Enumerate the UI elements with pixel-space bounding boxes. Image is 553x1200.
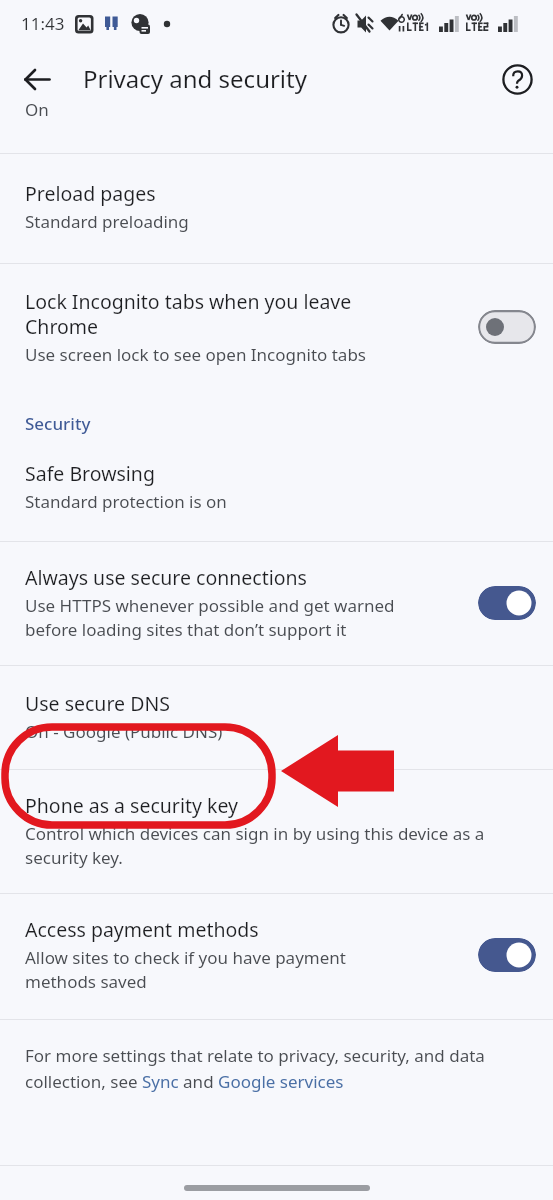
button[interactable]: Safe Browsing	[0, 450, 553, 541]
button[interactable]: Access payment methods	[0, 894, 553, 1019]
button[interactable]: Phone as a security key	[0, 770, 553, 893]
button[interactable]: On	[478, 586, 536, 620]
staticText: On - Google (Public DNS)	[25, 720, 530, 743]
button[interactable]: Help	[491, 53, 543, 105]
button[interactable]: Always use secure connections	[0, 542, 553, 665]
staticText: Use secure DNS	[25, 690, 530, 717]
staticText: Phone as a security key	[25, 792, 536, 819]
staticText: Use screen lock to see open Incognito ta…	[25, 343, 417, 366]
button[interactable]: On	[478, 938, 536, 972]
staticText: Always use secure connections	[25, 564, 417, 591]
staticText: Standard preloading	[25, 210, 530, 233]
staticText: On	[25, 98, 49, 121]
staticText: For more settings that relate to privacy…	[25, 1044, 533, 1093]
staticText: Control which devices can sign in by usi…	[25, 822, 536, 869]
staticText: Allow sites to check if you have payment…	[25, 946, 417, 993]
staticText: Privacy and security	[83, 62, 307, 95]
staticText: Standard protection is on	[25, 490, 530, 513]
button[interactable]: Lock Incognito tabs when you leave Chrom…	[0, 264, 553, 396]
staticText: Preload pages	[25, 180, 530, 207]
staticText: Security	[25, 412, 91, 435]
staticText: Lock Incognito tabs when you leave Chrom…	[25, 288, 417, 340]
button[interactable]: Off	[478, 310, 536, 344]
button[interactable]: Preload pages	[0, 154, 553, 263]
staticText: 11:43	[21, 12, 65, 35]
button[interactable]: Use secure DNS	[0, 666, 553, 769]
staticText: Use HTTPS whenever possible and get warn…	[25, 594, 417, 641]
button[interactable]: Back	[10, 52, 64, 106]
staticText: Access payment methods	[25, 916, 417, 943]
staticText: Safe Browsing	[25, 460, 530, 487]
